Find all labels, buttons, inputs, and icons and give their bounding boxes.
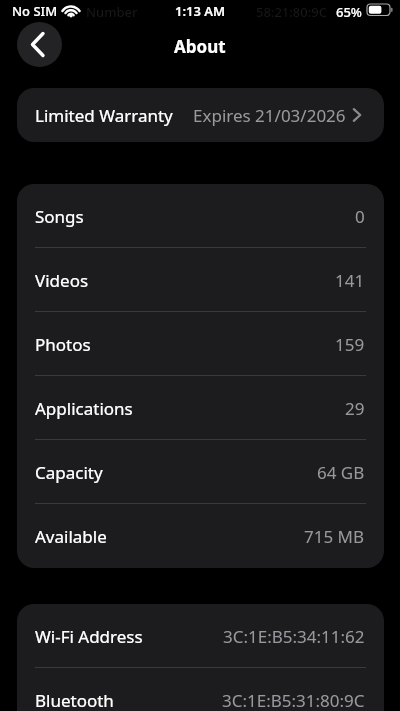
staticText: 0	[355, 205, 365, 228]
button[interactable]: Photos	[17, 312, 384, 376]
staticText: 715 MB	[304, 525, 365, 548]
button[interactable]: Limited Warranty	[17, 88, 384, 142]
staticText: 3C:1E:B5:31:80:9C	[222, 689, 365, 711]
staticText: 159	[335, 333, 365, 356]
staticText: 29	[345, 397, 365, 420]
staticText: Songs	[35, 205, 84, 228]
staticText: Available	[35, 525, 107, 548]
staticText: Wi-Fi Address	[35, 625, 143, 648]
button[interactable]: Available	[17, 504, 384, 568]
staticText: 65%	[336, 3, 362, 21]
staticText: Expires 21/03/2026	[193, 104, 346, 127]
staticText: Bluetooth	[35, 689, 114, 711]
button[interactable]: Songs	[17, 184, 384, 248]
staticText: Applications	[35, 397, 133, 420]
button[interactable]: Videos	[17, 248, 384, 312]
button[interactable]: Wi-Fi Address	[17, 604, 384, 668]
staticText: 3C:1E:B5:34:11:62	[223, 625, 365, 648]
staticText: No SIM	[12, 2, 58, 20]
staticText: 141	[335, 269, 365, 292]
staticText: Number	[86, 3, 138, 21]
staticText: 64 GB	[317, 461, 365, 484]
button[interactable]: Bluetooth	[17, 668, 384, 711]
button[interactable]: Applications	[17, 376, 384, 440]
staticText: Capacity	[35, 461, 103, 484]
staticText: Videos	[35, 269, 89, 292]
staticText: Limited Warranty	[35, 104, 173, 127]
button[interactable]: Capacity	[17, 440, 384, 504]
button[interactable]	[17, 22, 62, 67]
staticText: 58:21:80:9C	[256, 3, 327, 21]
staticText: Photos	[35, 333, 91, 356]
staticText: 1:13 AM	[175, 2, 226, 20]
staticText: About	[174, 35, 226, 58]
